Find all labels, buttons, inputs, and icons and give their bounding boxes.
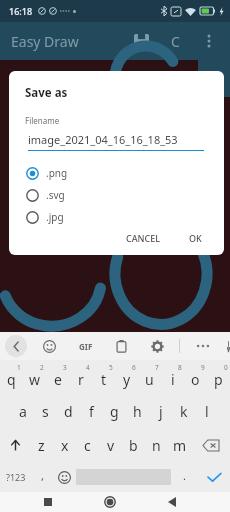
button[interactable]: More — [191, 334, 215, 358]
button[interactable]: u — [138, 360, 161, 394]
button[interactable]: e — [46, 360, 69, 394]
button[interactable]: .png — [9, 162, 224, 184]
button[interactable]: l — [195, 394, 218, 428]
staticText: j — [159, 402, 163, 421]
button[interactable]: y — [115, 360, 138, 394]
staticText: m — [173, 436, 187, 455]
button[interactable]: Shift — [0, 428, 30, 462]
button[interactable]: .svg — [9, 184, 224, 206]
staticText: g — [110, 402, 119, 421]
button[interactable]: Recents — [31, 492, 65, 512]
button[interactable]: h — [126, 394, 149, 428]
button[interactable]: More options — [192, 24, 226, 58]
staticText: q — [7, 370, 16, 389]
button[interactable]: image_2021_04_16_16_18_53 — [28, 132, 204, 151]
staticText: 5 — [109, 363, 113, 372]
button[interactable]: d — [57, 394, 80, 428]
staticText: GIF — [79, 341, 93, 352]
button[interactable]: Back — [155, 492, 189, 512]
button[interactable]: n — [145, 428, 168, 462]
button[interactable]: o — [184, 360, 207, 394]
button[interactable]: Done — [198, 462, 230, 492]
staticText: Filename — [25, 115, 60, 126]
button[interactable]: k — [172, 394, 195, 428]
staticText: o — [191, 370, 200, 389]
button[interactable]: j — [149, 394, 172, 428]
button[interactable]: Back — [5, 335, 27, 357]
button[interactable]: Clear — [158, 24, 192, 58]
button[interactable]: a — [11, 394, 34, 428]
staticText: 4 — [86, 363, 90, 372]
button[interactable]: Voice input — [227, 334, 230, 358]
button[interactable]: Stickers — [37, 334, 61, 358]
button[interactable]: OK — [181, 228, 210, 246]
button[interactable]: x — [53, 428, 76, 462]
button[interactable]: CANCEL — [118, 228, 169, 246]
button[interactable]: GIF — [74, 334, 98, 358]
staticText: 9 — [201, 363, 205, 372]
staticText: e — [54, 370, 62, 389]
staticText: Easy Draw — [11, 32, 79, 51]
staticText: 6 — [132, 363, 136, 372]
staticText: r — [78, 370, 84, 389]
staticText: h — [133, 402, 142, 421]
staticText: w — [29, 370, 41, 389]
staticText: a — [19, 402, 27, 421]
staticText: y — [123, 370, 131, 389]
button[interactable]: Backspace — [191, 428, 230, 462]
button[interactable]: w — [23, 360, 46, 394]
staticText: s — [42, 402, 49, 421]
button[interactable]: m — [168, 428, 191, 462]
button[interactable]: Settings — [145, 334, 169, 358]
staticText: k — [180, 402, 188, 421]
staticText: ?123 — [6, 471, 26, 483]
staticText: 2 — [40, 363, 44, 372]
button[interactable]: Home — [93, 492, 127, 512]
button[interactable]: s — [34, 394, 57, 428]
button[interactable]: g — [103, 394, 126, 428]
button[interactable]: t — [92, 360, 115, 394]
staticText: image_2021_04_16_16_18_53 — [28, 132, 178, 147]
button[interactable]: .jpg — [9, 206, 224, 228]
staticText: 7 — [155, 363, 159, 372]
button[interactable]: . — [171, 462, 198, 492]
staticText: f — [89, 402, 94, 421]
staticText: CANCEL — [126, 232, 161, 242]
staticText: x — [61, 436, 69, 455]
button[interactable]: q — [0, 360, 23, 394]
button[interactable]: i — [161, 360, 184, 394]
staticText: u — [145, 370, 154, 389]
staticText: Save as — [25, 85, 68, 101]
button[interactable]: ?123 — [0, 462, 31, 492]
button[interactable]: Emoji — [53, 462, 76, 492]
staticText: i — [171, 370, 175, 389]
staticText: l — [205, 402, 209, 421]
staticText: 0 — [224, 363, 228, 372]
button[interactable]: z — [30, 428, 53, 462]
staticText: p — [214, 370, 223, 389]
button[interactable]: p — [207, 360, 230, 394]
staticText: . — [183, 468, 186, 483]
staticText: 1 — [17, 363, 21, 372]
button[interactable]: Clipboard — [109, 334, 133, 358]
staticText: C — [171, 32, 180, 51]
staticText: n — [152, 436, 161, 455]
button[interactable]: Save — [124, 24, 158, 58]
staticText: .png — [46, 166, 68, 180]
staticText: c — [84, 436, 91, 455]
staticText: OK — [189, 232, 202, 242]
staticText: t — [101, 370, 107, 389]
button[interactable]: , — [31, 462, 53, 492]
button[interactable]: b — [122, 428, 145, 462]
staticText: z — [38, 436, 45, 455]
button[interactable]: c — [76, 428, 99, 462]
staticText: .svg — [46, 188, 65, 202]
staticText: b — [129, 436, 138, 455]
button[interactable]: v — [99, 428, 122, 462]
staticText: .jpg — [46, 210, 64, 224]
staticText: , — [41, 468, 44, 483]
button[interactable]: Eraser — [172, 66, 194, 88]
button[interactable]: r — [69, 360, 92, 394]
button[interactable]: f — [80, 394, 103, 428]
